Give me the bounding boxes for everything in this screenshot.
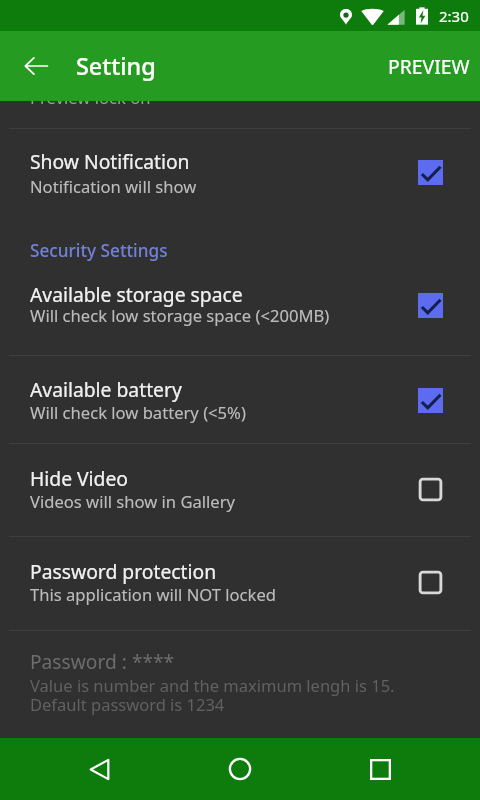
staticText: Will check low storage space (<200MB) bbox=[30, 304, 330, 327]
button[interactable]: Show Notification bbox=[0, 142, 480, 204]
staticText: Notification will show bbox=[30, 175, 197, 198]
staticText: Hide Video bbox=[30, 465, 129, 491]
button[interactable]: Back bbox=[14, 44, 58, 88]
staticText: Available battery bbox=[30, 376, 182, 402]
staticText: Preview lock on bbox=[30, 86, 151, 109]
button[interactable]: Hide Video bbox=[0, 459, 480, 521]
button[interactable]: Home bbox=[215, 744, 265, 794]
staticText: Value is number and the maximum lengh is… bbox=[30, 674, 395, 696]
staticText: Will check low battery (<5%) bbox=[30, 401, 246, 424]
button[interactable]: Recent apps bbox=[355, 744, 405, 794]
staticText: PREVIEW bbox=[388, 53, 470, 79]
staticText: Password protection bbox=[30, 558, 217, 584]
staticText: Default password is 1234 bbox=[30, 693, 225, 715]
staticText: Password : **** bbox=[30, 648, 175, 674]
button[interactable]: Available battery bbox=[0, 370, 480, 432]
staticText: Videos will show in Gallery bbox=[30, 490, 236, 513]
staticText: This application will NOT locked bbox=[30, 583, 276, 606]
staticText: Show Notification bbox=[30, 148, 190, 174]
staticText: Available storage space bbox=[30, 281, 243, 307]
staticText: Security Settings bbox=[30, 239, 168, 262]
button[interactable]: Back bbox=[74, 744, 124, 794]
staticText: 2:30 bbox=[439, 6, 469, 26]
staticText: Setting bbox=[76, 50, 156, 82]
button[interactable]: Available storage space bbox=[0, 275, 480, 337]
button[interactable]: PREVIEW bbox=[372, 31, 480, 101]
button[interactable]: Password protection bbox=[0, 552, 480, 614]
